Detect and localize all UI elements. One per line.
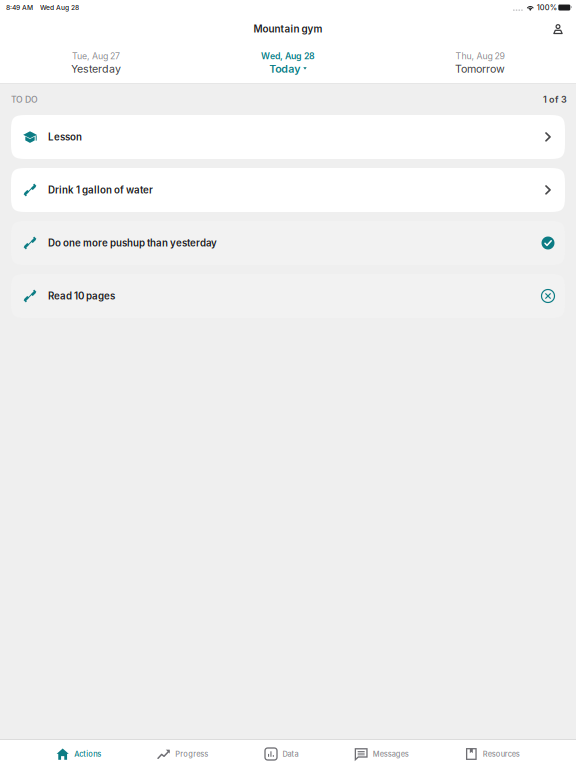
staticText: 1 of 3 — [543, 94, 567, 105]
staticText: Thu, Aug 29 — [455, 51, 504, 61]
staticText: Tomorrow — [455, 62, 505, 75]
staticText: Messages — [373, 749, 409, 758]
staticText: Data — [282, 749, 298, 758]
staticText: 8:49 AM — [6, 3, 33, 12]
staticText: Do one more pushup than yesterday — [48, 237, 217, 249]
staticText: Tue, Aug 27 — [72, 51, 120, 61]
button[interactable]: Progress — [157, 740, 208, 768]
staticText: Lesson — [48, 131, 82, 143]
button[interactable]: Thu, Aug 29 — [384, 43, 576, 83]
button[interactable]: Actions — [56, 740, 101, 768]
staticText: Wed Aug 28 — [40, 3, 79, 12]
button[interactable]: Read 10 pages — [11, 274, 565, 318]
button[interactable]: Tue, Aug 27 — [0, 43, 192, 83]
button[interactable]: Messages — [355, 740, 409, 768]
button[interactable]: Data — [264, 740, 298, 768]
button[interactable]: Resources — [465, 740, 520, 768]
staticText: Progress — [175, 749, 208, 758]
staticText: Wed, Aug 28 — [261, 51, 315, 61]
staticText: TO DO — [11, 94, 38, 105]
button[interactable]: Do one more pushup than yesterday — [11, 221, 565, 265]
staticText: Today — [269, 62, 300, 75]
staticText: Actions — [74, 749, 101, 758]
staticText: Yesterday — [71, 62, 121, 75]
staticText: 100% — [537, 3, 557, 12]
button[interactable]: Account — [547, 18, 569, 40]
button[interactable]: Lesson — [11, 115, 565, 159]
staticText: Drink 1 gallon of water — [48, 184, 153, 196]
staticText: Read 10 pages — [48, 290, 115, 302]
button[interactable]: Wed, Aug 28 — [192, 43, 384, 83]
staticText: Mountain gym — [253, 23, 322, 35]
button[interactable]: Drink 1 gallon of water — [11, 168, 565, 212]
staticText: Resources — [483, 749, 520, 758]
